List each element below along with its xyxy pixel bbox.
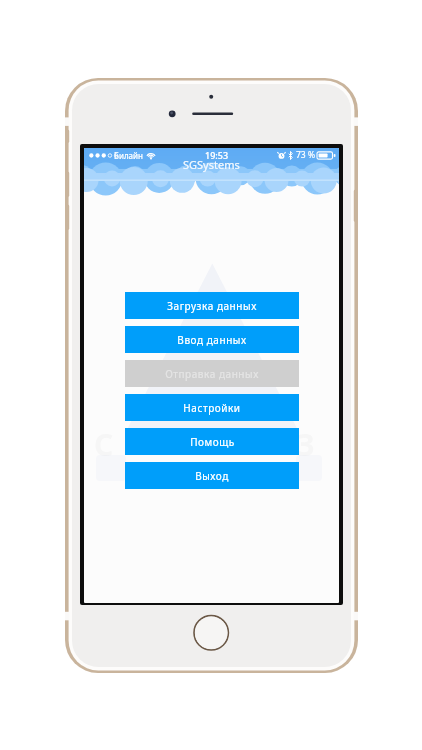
staticText: Билайн xyxy=(114,150,143,161)
staticText: SGSystems xyxy=(183,157,240,172)
staticText: 19:53 xyxy=(205,149,229,161)
staticText: Настройки xyxy=(183,401,241,415)
button[interactable]: Ввод данных xyxy=(125,326,299,353)
button[interactable]: Отправка данных xyxy=(125,360,299,387)
button[interactable]: Выход xyxy=(125,462,299,489)
staticText: Помощь xyxy=(190,435,235,449)
button[interactable]: Настройки xyxy=(125,394,299,421)
button[interactable]: Загрузка данных xyxy=(125,292,299,319)
staticText: Ввод данных xyxy=(177,333,247,347)
button[interactable]: Помощь xyxy=(125,428,299,455)
staticText: Отправка данных xyxy=(165,367,259,381)
staticText: З xyxy=(297,424,315,465)
staticText: Загрузка данных xyxy=(167,299,257,313)
staticText: 73 % xyxy=(296,149,315,161)
staticText: Выход xyxy=(195,469,229,483)
